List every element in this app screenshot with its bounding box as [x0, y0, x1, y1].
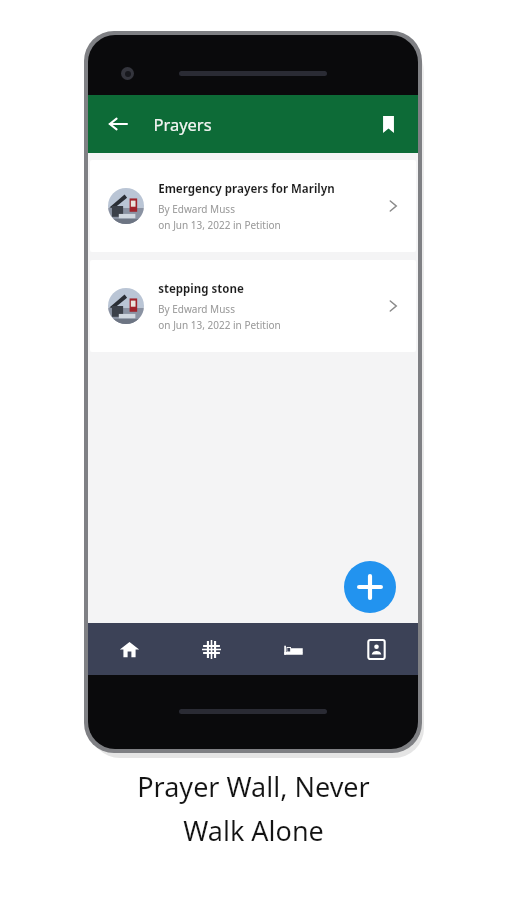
button[interactable]: Prayer wall	[252, 623, 335, 675]
staticText: Walk Alone	[183, 812, 324, 849]
button[interactable]: Emergency prayers for Marilyn	[90, 160, 416, 252]
button[interactable]: Back	[97, 103, 139, 145]
button[interactable]: Home	[88, 623, 170, 675]
staticText: By Edward Muss	[158, 202, 235, 216]
staticText: Prayer Wall, Never	[137, 768, 370, 805]
button[interactable]: Add prayer	[344, 561, 396, 613]
staticText: on Jun 13, 2022 in Petition	[158, 318, 281, 332]
button[interactable]: Profile	[335, 623, 418, 675]
button[interactable]: Bookmarks	[367, 103, 409, 145]
staticText: stepping stone	[158, 281, 244, 297]
button[interactable]: Groups	[170, 623, 252, 675]
button[interactable]: stepping stone	[90, 260, 416, 352]
staticText: By Edward Muss	[158, 302, 235, 316]
staticText: Emergency prayers for Marilyn	[158, 181, 335, 197]
staticText: on Jun 13, 2022 in Petition	[158, 218, 281, 232]
staticText: Prayers	[153, 113, 212, 135]
